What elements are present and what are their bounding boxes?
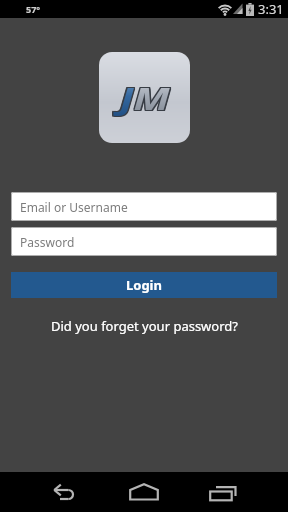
button[interactable] (129, 483, 159, 501)
staticText: JM (119, 78, 169, 120)
staticText: JM (119, 77, 169, 119)
staticText: 57° (26, 3, 41, 15)
staticText: JM (120, 77, 170, 119)
button[interactable]: Password (11, 227, 277, 256)
staticText: Login (126, 276, 162, 294)
button[interactable]: Did you forget your password? (51, 317, 238, 335)
button[interactable]: JM (99, 52, 190, 143)
button[interactable]: Email or Username (11, 192, 277, 221)
staticText: JM (120, 78, 170, 120)
button[interactable] (209, 486, 237, 502)
staticText: Email or Username (20, 199, 128, 215)
staticText: Password (20, 234, 75, 250)
button[interactable] (52, 482, 78, 502)
button[interactable]: Login (11, 272, 277, 298)
staticText: JM (121, 78, 171, 120)
staticText: JM (120, 76, 170, 118)
staticText: JM (121, 76, 171, 118)
staticText: 3:31 (258, 0, 284, 18)
staticText: JM (119, 76, 169, 118)
staticText: JM (121, 77, 171, 119)
